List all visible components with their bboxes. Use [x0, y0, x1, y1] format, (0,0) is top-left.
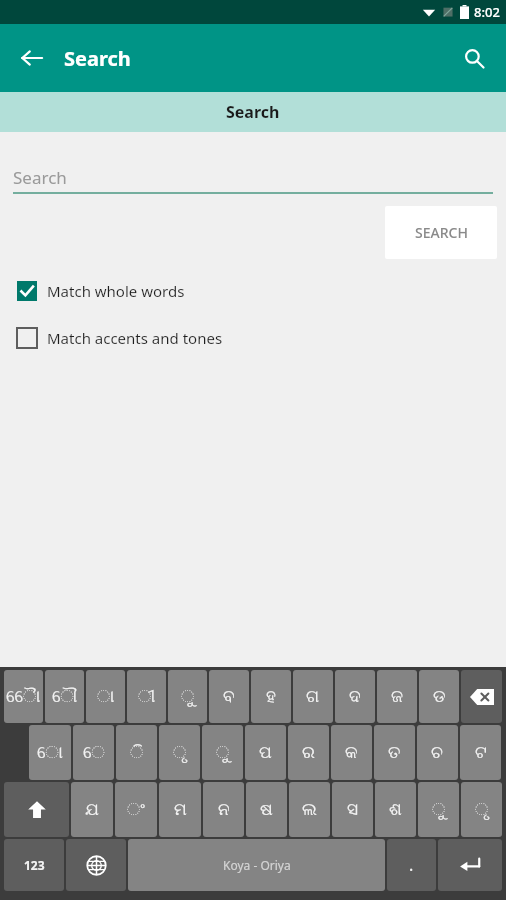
staticText: ା	[97, 688, 115, 705]
staticText: ୋ	[37, 744, 63, 761]
staticText: ପ	[259, 744, 272, 761]
staticText: ସ	[347, 801, 359, 818]
button[interactable]: Change language	[66, 839, 126, 891]
staticText: Koya - Oriya	[223, 857, 291, 873]
button[interactable]: ଜ	[377, 670, 417, 723]
staticText: ଷ	[260, 801, 273, 818]
staticText: ଲ	[302, 801, 317, 818]
button[interactable]: Search	[0, 92, 506, 132]
button[interactable]: ର	[288, 725, 329, 780]
staticText: ୁ	[432, 801, 446, 818]
button[interactable]: ୀ	[127, 670, 166, 723]
button[interactable]: ବ	[209, 670, 249, 723]
button[interactable]: ଯ	[71, 782, 113, 837]
staticText: Match accents and tones	[47, 328, 223, 348]
staticText: Match whole words	[47, 281, 185, 301]
button[interactable]: Koya - Oriya	[128, 839, 385, 891]
button[interactable]: Backspace	[461, 670, 502, 723]
button[interactable]: ଡ	[419, 670, 459, 723]
button[interactable]: ି	[116, 725, 157, 780]
button[interactable]: ତ	[374, 725, 415, 780]
staticText: ଗ	[306, 688, 320, 705]
button[interactable]: Back	[8, 34, 56, 82]
button[interactable]: Search	[13, 162, 493, 192]
button[interactable]: େ	[73, 725, 114, 780]
button[interactable]: Match whole words	[0, 281, 506, 301]
button[interactable]: ଗ	[293, 670, 333, 723]
button[interactable]: Search	[450, 34, 498, 82]
staticText: ମ	[174, 801, 187, 818]
staticText: ୀ	[138, 688, 156, 705]
staticText: ୁ	[216, 744, 230, 761]
staticText: 8:02	[474, 3, 500, 21]
button[interactable]: ୃ	[461, 782, 502, 837]
button[interactable]: ଂ	[115, 782, 157, 837]
button[interactable]: ଟ	[460, 725, 501, 780]
staticText: ୃ	[173, 744, 187, 761]
button[interactable]: ଦ	[335, 670, 375, 723]
staticText: ୌ	[52, 688, 78, 705]
staticText: ଶ	[389, 801, 402, 818]
button[interactable]: ୁ	[202, 725, 243, 780]
button[interactable]: ୁ	[168, 670, 207, 723]
staticText: ନ	[218, 801, 230, 818]
staticText: SEARCH	[415, 223, 468, 242]
button[interactable]: .	[387, 839, 436, 891]
button[interactable]: Match accents and tones	[0, 328, 506, 348]
staticText: ଜ	[391, 688, 403, 705]
button[interactable]: ୌ	[45, 670, 84, 723]
staticText: ର	[302, 744, 315, 761]
staticText: Search	[13, 166, 67, 189]
staticText: ବ	[223, 688, 235, 705]
button[interactable]: ହ	[251, 670, 291, 723]
staticText: ୋୈ	[6, 688, 41, 705]
button[interactable]: ଶ	[375, 782, 416, 837]
staticText: ଯ	[85, 801, 99, 818]
button[interactable]: ା	[86, 670, 125, 723]
staticText: ତ	[388, 744, 401, 761]
staticText: ଂ	[127, 801, 145, 818]
staticText: ଦ	[349, 688, 361, 705]
button[interactable]: ୁ	[418, 782, 459, 837]
staticText: େ	[83, 744, 105, 761]
staticText: ଚ	[431, 744, 444, 761]
staticText: କ	[345, 744, 358, 761]
staticText: .	[409, 854, 414, 876]
staticText: ହ	[266, 688, 276, 705]
staticText: ଡ	[433, 688, 446, 705]
staticText: 123	[24, 857, 45, 873]
button[interactable]: କ	[331, 725, 372, 780]
button[interactable]: Shift	[4, 782, 69, 837]
button[interactable]: 123	[4, 839, 64, 891]
button[interactable]: ୃ	[159, 725, 200, 780]
staticText: ୁ	[181, 688, 195, 705]
button[interactable]: ଚ	[417, 725, 458, 780]
staticText: ୃ	[475, 801, 489, 818]
button[interactable]: ମ	[159, 782, 201, 837]
button[interactable]: ନ	[203, 782, 244, 837]
button[interactable]: ସ	[332, 782, 373, 837]
button[interactable]: SEARCH	[385, 206, 497, 259]
staticText: ଟ	[475, 744, 487, 761]
staticText: Search	[64, 45, 131, 72]
button[interactable]: ପ	[245, 725, 286, 780]
button[interactable]: ଷ	[246, 782, 287, 837]
button[interactable]: ୋ	[29, 725, 71, 780]
button[interactable]: Enter	[438, 839, 502, 891]
staticText: ି	[130, 744, 144, 761]
button[interactable]: ଲ	[289, 782, 330, 837]
staticText: Search	[226, 101, 280, 123]
button[interactable]: ୋୈ	[4, 670, 43, 723]
